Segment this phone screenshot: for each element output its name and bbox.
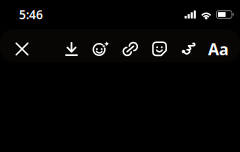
button[interactable]: Aa — [204, 33, 233, 65]
button[interactable]: Sticker — [145, 33, 174, 65]
button[interactable]: Draw — [174, 33, 204, 65]
button[interactable]: Link — [116, 33, 145, 65]
button[interactable]: AI sticker — [86, 33, 116, 65]
staticText: 5:46 — [19, 6, 43, 22]
button[interactable]: Save — [57, 33, 86, 65]
staticText: Aa — [208, 38, 229, 60]
button[interactable]: Close — [7, 33, 37, 65]
